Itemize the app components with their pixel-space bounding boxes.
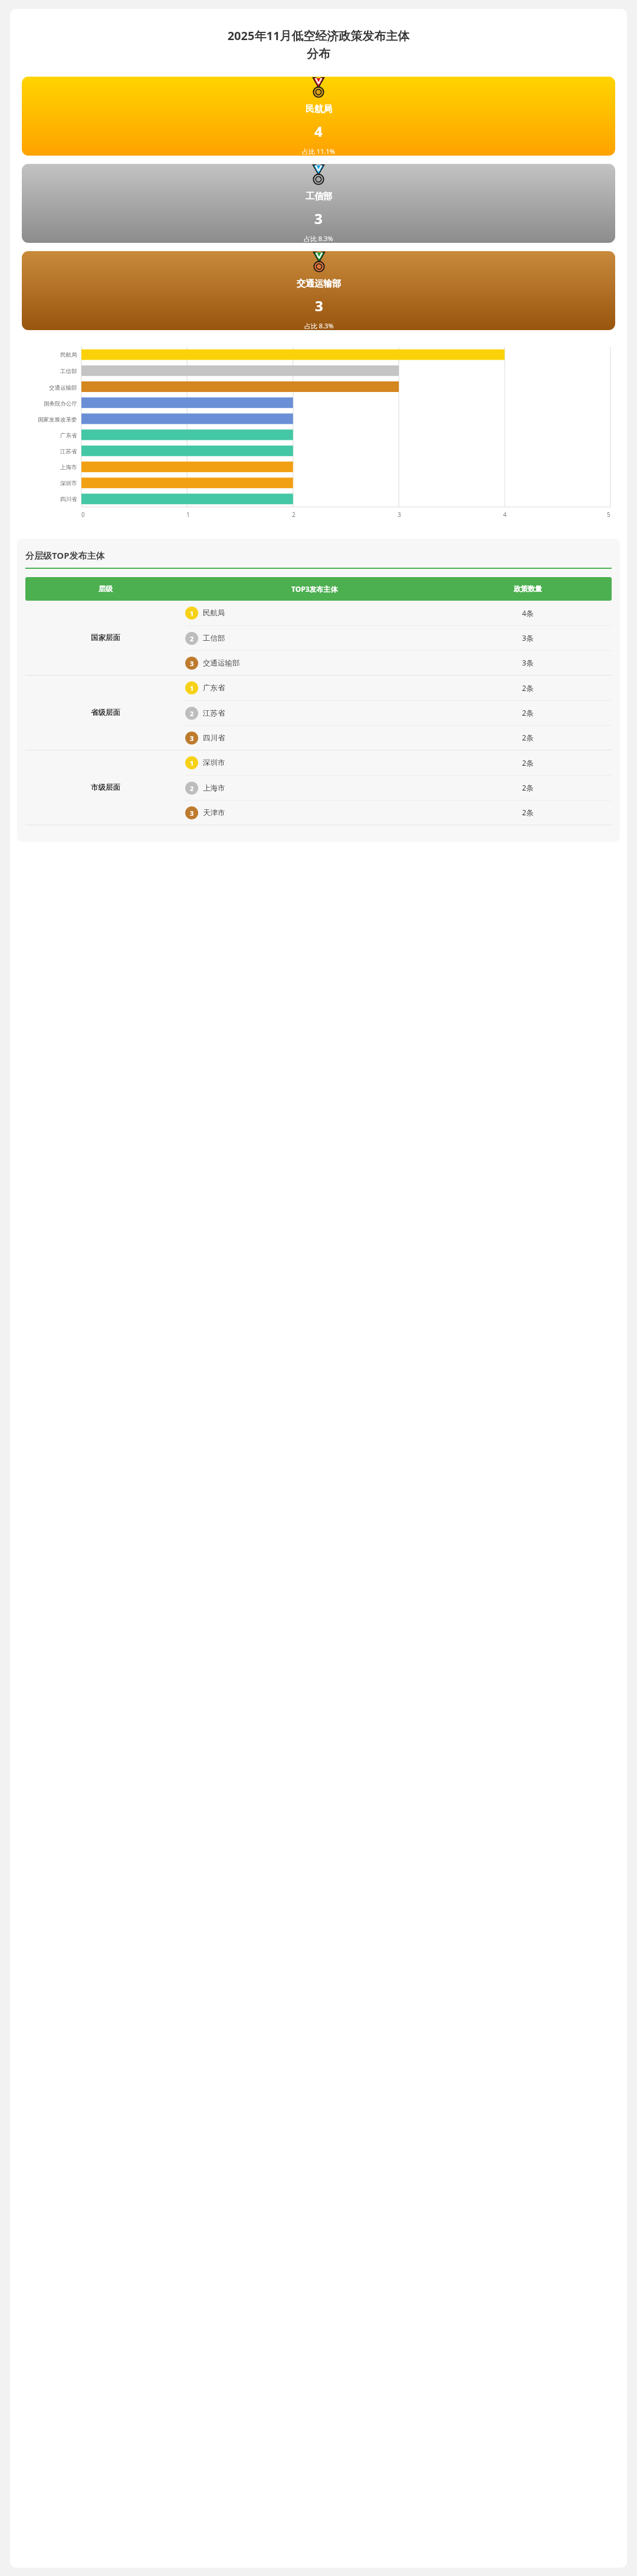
button[interactable]: 2 xyxy=(185,701,612,725)
staticText: 3条 xyxy=(522,633,534,643)
staticText: 2 xyxy=(190,709,194,718)
staticText: 2条 xyxy=(522,683,534,693)
button[interactable]: 1 xyxy=(185,676,612,700)
button[interactable]: 2 xyxy=(185,626,612,650)
staticText: 1 xyxy=(190,684,194,693)
button[interactable]: 3 xyxy=(185,651,612,675)
staticText: 深圳市 xyxy=(60,480,77,487)
button[interactable]: Rank 1 medal xyxy=(22,77,615,156)
button[interactable]: 1 xyxy=(185,750,612,775)
staticText: 1 xyxy=(186,510,190,519)
staticText: 层级 xyxy=(98,584,113,593)
staticText: 交通运输部 xyxy=(49,384,77,391)
staticText: 0 xyxy=(81,510,85,519)
button[interactable]: Rank 3 medal xyxy=(22,251,615,330)
staticText: 四川省 xyxy=(203,733,225,743)
staticText: 2条 xyxy=(522,783,534,793)
staticText: 2条 xyxy=(522,733,534,743)
staticText: 广东省 xyxy=(60,432,77,439)
staticText: 工信部 xyxy=(60,368,77,375)
staticText: 工信部 xyxy=(203,634,225,643)
staticText: 国家发展改革委 xyxy=(38,416,77,423)
staticText: 上海市 xyxy=(60,464,77,471)
staticText: 民航局 xyxy=(203,608,225,618)
staticText: 3 xyxy=(315,296,323,315)
staticText: 3 xyxy=(398,510,401,519)
button[interactable]: 1 xyxy=(185,601,612,625)
staticText: 省级层面 xyxy=(91,708,120,717)
staticText: 深圳市 xyxy=(203,758,225,767)
staticText: 上海市 xyxy=(203,783,225,793)
staticText: 2 xyxy=(292,510,295,519)
staticText: 2025年11月低空经济政策发布主体 分布 xyxy=(23,28,614,61)
other: Rank 3 medal xyxy=(310,252,328,272)
staticText: 占比 11.1% xyxy=(302,147,335,156)
button[interactable]: 2 xyxy=(185,776,612,800)
staticText: 民航局 xyxy=(60,351,77,358)
staticText: 2 xyxy=(190,784,194,793)
staticText: 国家层面 xyxy=(91,633,120,643)
staticText: 4 xyxy=(314,121,323,141)
staticText: 4 xyxy=(503,510,507,519)
staticText: 政策数量 xyxy=(514,584,542,593)
staticText: 四川省 xyxy=(60,496,77,503)
other: Rank 1 medal xyxy=(310,77,327,98)
staticText: 4条 xyxy=(522,608,534,618)
staticText: 交通运输部 xyxy=(203,658,240,668)
staticText: 国务院办公厅 xyxy=(44,400,77,407)
staticText: 1 xyxy=(190,609,194,618)
staticText: 广东省 xyxy=(203,683,225,693)
staticText: 民航局 xyxy=(306,104,332,115)
staticText: 天津市 xyxy=(203,808,225,818)
staticText: 2条 xyxy=(522,708,534,718)
other: Rank 2 medal xyxy=(310,164,327,185)
button[interactable]: 3 xyxy=(185,726,612,750)
staticText: 工信部 xyxy=(306,191,332,202)
staticText: 分层级TOP发布主体 xyxy=(25,549,105,561)
staticText: 1 xyxy=(190,759,194,767)
staticText: 3 xyxy=(314,209,323,228)
staticText: 2 xyxy=(190,634,194,643)
staticText: 交通运输部 xyxy=(297,278,341,289)
staticText: 5 xyxy=(607,510,610,519)
staticText: 占比 8.3% xyxy=(304,234,333,243)
staticText: TOP3发布主体 xyxy=(291,584,338,594)
staticText: 3 xyxy=(190,734,194,743)
staticText: 2条 xyxy=(522,758,534,768)
staticText: 江苏省 xyxy=(203,709,225,718)
button[interactable]: 3 xyxy=(185,801,612,825)
staticText: 市级层面 xyxy=(91,783,120,792)
staticText: 3 xyxy=(190,809,194,818)
staticText: 3 xyxy=(190,659,194,668)
staticText: 占比 8.3% xyxy=(304,321,334,330)
staticText: 3条 xyxy=(522,658,534,668)
staticText: 江苏省 xyxy=(60,448,77,455)
staticText: 2条 xyxy=(522,808,534,818)
button[interactable]: Rank 2 medal xyxy=(22,164,615,243)
